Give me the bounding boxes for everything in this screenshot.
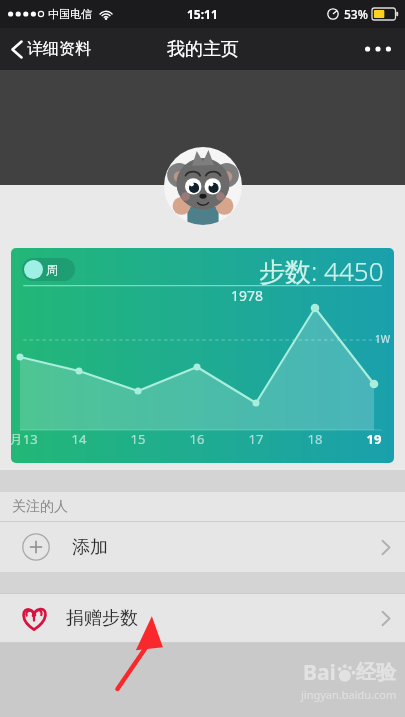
staticText: 1W	[375, 332, 391, 346]
staticText: 详细资料	[27, 39, 91, 59]
staticText: 关注的人	[12, 498, 68, 516]
button[interactable]: 周	[11, 248, 394, 463]
staticText: 14	[59, 430, 99, 448]
staticText: 1978	[231, 286, 264, 305]
staticText: 18	[295, 430, 335, 448]
staticText: 中国电信	[48, 7, 92, 21]
staticText: 19	[354, 430, 394, 448]
button[interactable]: More options	[351, 36, 405, 62]
staticText: 经验	[356, 660, 396, 685]
staticText: 添加	[72, 536, 108, 559]
button[interactable]: 添加	[0, 522, 405, 572]
button[interactable]: 捐赠步数	[0, 594, 405, 642]
staticText: 16	[177, 430, 217, 448]
button[interactable]: Profile avatar	[164, 147, 242, 225]
staticText: 4月13	[11, 430, 40, 448]
staticText: 15	[118, 430, 158, 448]
staticText: 步数: 4450	[259, 253, 384, 289]
staticText: 周	[46, 262, 58, 277]
staticText: 15:11	[187, 6, 218, 22]
staticText: 我的主页	[167, 38, 239, 61]
staticText: 捐赠步数	[66, 607, 138, 630]
button[interactable]: 详细资料	[0, 33, 101, 65]
button[interactable]: 周	[22, 258, 75, 281]
staticText: jingyan.baidu.com	[301, 687, 397, 702]
staticText: Bai	[303, 658, 336, 687]
staticText: 17	[236, 430, 276, 448]
staticText: 53%	[344, 6, 368, 22]
